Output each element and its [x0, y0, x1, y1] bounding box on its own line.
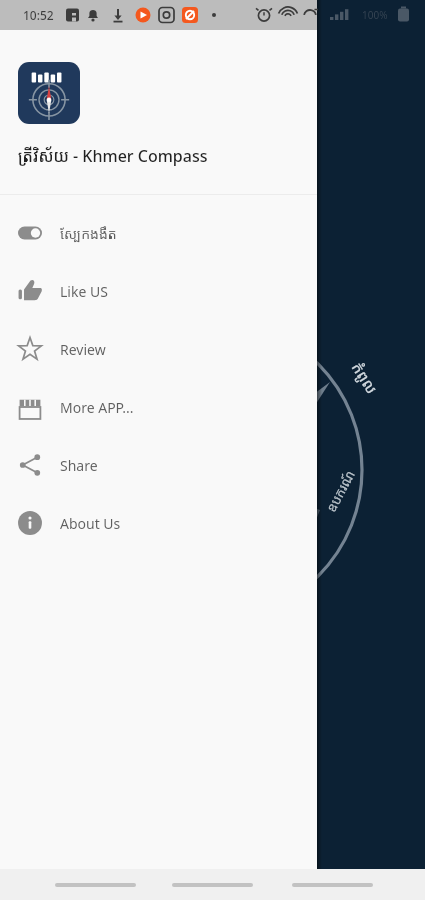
button[interactable]: About us [0, 494, 317, 552]
staticText: Share [60, 456, 98, 475]
staticText: 10:52 [23, 7, 54, 23]
button[interactable]: Review [0, 320, 317, 378]
staticText: កំពូល [347, 358, 382, 398]
button[interactable]: App icon [18, 62, 80, 124]
staticText: ត្រីវិស័យ - Khmer Compass [18, 145, 208, 167]
staticText: ឧបករណ៍ [322, 467, 359, 515]
staticText: Review [60, 340, 106, 359]
button[interactable]: Share [0, 436, 317, 494]
staticText: About Us [60, 514, 121, 533]
staticText: Like US [60, 282, 108, 301]
staticText: 100% [362, 8, 388, 22]
button[interactable]: Dark theme toggle [0, 204, 317, 262]
staticText: ស្បែកងងឹត [60, 224, 117, 243]
button[interactable]: Like us [0, 262, 317, 320]
button[interactable]: More apps [0, 378, 317, 436]
staticText: More APP... [60, 398, 134, 417]
